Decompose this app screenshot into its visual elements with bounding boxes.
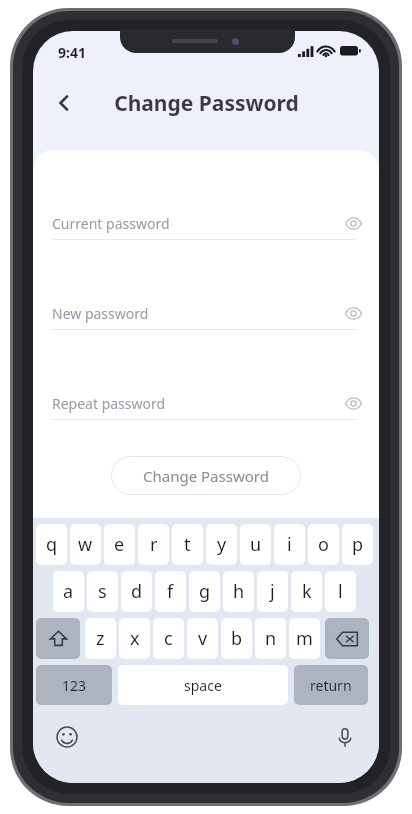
button[interactable]: z xyxy=(85,618,116,659)
button[interactable]: b xyxy=(221,618,252,659)
staticText: z xyxy=(96,626,105,651)
button[interactable]: r xyxy=(138,524,169,565)
staticText: f xyxy=(167,579,174,604)
button[interactable]: j xyxy=(257,571,288,612)
staticText: j xyxy=(270,579,275,604)
button[interactable]: w xyxy=(70,524,101,565)
staticText: Change Password xyxy=(114,89,299,118)
button[interactable]: a xyxy=(53,571,84,612)
staticText: l xyxy=(338,579,343,604)
staticText: h xyxy=(233,579,245,604)
staticText: m xyxy=(296,626,313,651)
staticText: i xyxy=(287,532,292,557)
button[interactable]: Backspace xyxy=(325,618,369,659)
staticText: space xyxy=(184,676,222,695)
button[interactable]: Voice input xyxy=(328,720,362,754)
button[interactable]: Shift xyxy=(36,618,80,659)
button[interactable]: i xyxy=(274,524,305,565)
staticText: g xyxy=(199,579,211,604)
staticText: d xyxy=(131,579,143,604)
staticText: k xyxy=(302,579,312,604)
button[interactable]: p xyxy=(342,524,373,565)
staticText: r xyxy=(150,532,158,557)
staticText: e xyxy=(114,532,125,557)
staticText: Repeat password xyxy=(52,394,166,413)
button[interactable]: v xyxy=(187,618,218,659)
staticText: y xyxy=(217,532,227,557)
button[interactable]: Change Password xyxy=(111,456,301,495)
button[interactable]: m xyxy=(289,618,320,659)
staticText: New password xyxy=(52,304,149,323)
staticText: s xyxy=(98,579,107,604)
staticText: return xyxy=(310,676,352,695)
button[interactable]: k xyxy=(291,571,322,612)
staticText: o xyxy=(318,532,329,557)
button[interactable]: Repeat password xyxy=(33,386,379,420)
button[interactable]: Show password xyxy=(336,386,370,420)
button[interactable]: 123 xyxy=(36,665,112,705)
staticText: a xyxy=(63,579,74,604)
staticText: t xyxy=(184,532,191,557)
staticText: w xyxy=(78,532,93,557)
button[interactable]: u xyxy=(240,524,271,565)
button[interactable]: Show password xyxy=(336,206,370,240)
button[interactable]: c xyxy=(153,618,184,659)
button[interactable]: s xyxy=(87,571,118,612)
staticText: 123 xyxy=(62,676,87,695)
button[interactable]: return xyxy=(294,665,368,705)
staticText: v xyxy=(198,626,208,651)
staticText: x xyxy=(130,626,140,651)
button[interactable]: t xyxy=(172,524,203,565)
staticText: n xyxy=(265,626,277,651)
button[interactable]: g xyxy=(189,571,220,612)
button[interactable]: New password xyxy=(33,296,379,330)
button[interactable]: d xyxy=(121,571,152,612)
staticText: p xyxy=(352,532,364,557)
button[interactable]: f xyxy=(155,571,186,612)
button[interactable]: x xyxy=(119,618,150,659)
button[interactable]: Show password xyxy=(336,296,370,330)
staticText: 9:41 xyxy=(58,43,86,62)
button[interactable]: e xyxy=(104,524,135,565)
staticText: Current password xyxy=(52,214,170,233)
button[interactable]: h xyxy=(223,571,254,612)
button[interactable]: o xyxy=(308,524,339,565)
button[interactable]: q xyxy=(36,524,67,565)
button[interactable]: Current password xyxy=(33,206,379,240)
button[interactable]: n xyxy=(255,618,286,659)
button[interactable]: space xyxy=(118,665,288,705)
staticText: q xyxy=(46,532,58,557)
staticText: c xyxy=(164,626,173,651)
button[interactable]: Emoji xyxy=(50,720,84,754)
staticText: Change Password xyxy=(143,466,269,486)
button[interactable]: Back xyxy=(43,82,85,124)
button[interactable]: y xyxy=(206,524,237,565)
staticText: u xyxy=(250,532,262,557)
staticText: b xyxy=(231,626,243,651)
button[interactable]: l xyxy=(325,571,356,612)
